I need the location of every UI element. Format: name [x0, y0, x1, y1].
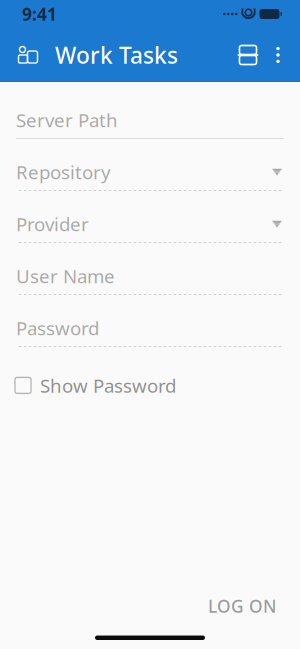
staticText: Repository	[16, 160, 111, 184]
button[interactable]: LOG ON	[192, 584, 292, 627]
staticText: Provider	[16, 212, 89, 236]
staticText: LOG ON	[208, 594, 276, 617]
staticText: Password	[16, 316, 99, 340]
staticText: User Name	[16, 264, 115, 288]
staticText: Work Tasks	[55, 40, 178, 70]
button[interactable]: Show Password	[0, 368, 300, 403]
button[interactable]: Scan	[231, 37, 265, 73]
staticText: Server Path	[16, 108, 118, 132]
staticText: Show Password	[40, 373, 176, 398]
button[interactable]: More options	[265, 37, 291, 73]
button[interactable]: Account	[13, 40, 43, 70]
staticText: 9:41	[22, 2, 57, 25]
